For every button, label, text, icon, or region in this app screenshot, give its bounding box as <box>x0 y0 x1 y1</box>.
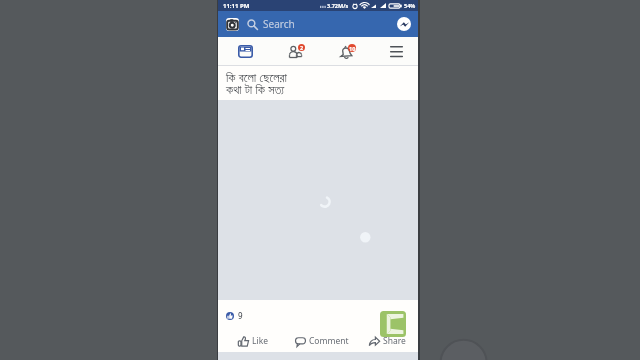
staticText: 11:11 PM <box>223 2 250 10</box>
button[interactable]: Camera <box>226 18 239 31</box>
staticText: 2 <box>300 44 304 51</box>
button[interactable]: Messenger <box>397 17 411 31</box>
button[interactable]: Comment <box>295 330 349 352</box>
button[interactable]: Like <box>238 330 268 352</box>
staticText: 3.72M/s <box>327 2 349 9</box>
button[interactable]: Share <box>369 330 406 352</box>
staticText: 9 <box>238 310 243 321</box>
staticText: Comment <box>309 335 349 347</box>
staticText: 10 <box>349 45 356 52</box>
button[interactable]: Notifications, 10 new <box>322 37 374 66</box>
staticText: 54% <box>404 2 416 9</box>
staticText: কি বলো ছেলেরা কথা টা কি সত্য <box>226 69 287 98</box>
staticText: Search <box>263 17 295 31</box>
staticText: Share <box>383 335 406 347</box>
staticText: Like <box>252 335 268 347</box>
button[interactable]: News Feed <box>218 37 272 66</box>
button[interactable]: Menu <box>374 37 418 66</box>
button[interactable]: Friend requests, 2 new <box>272 37 322 66</box>
button[interactable]: Search <box>247 11 397 37</box>
